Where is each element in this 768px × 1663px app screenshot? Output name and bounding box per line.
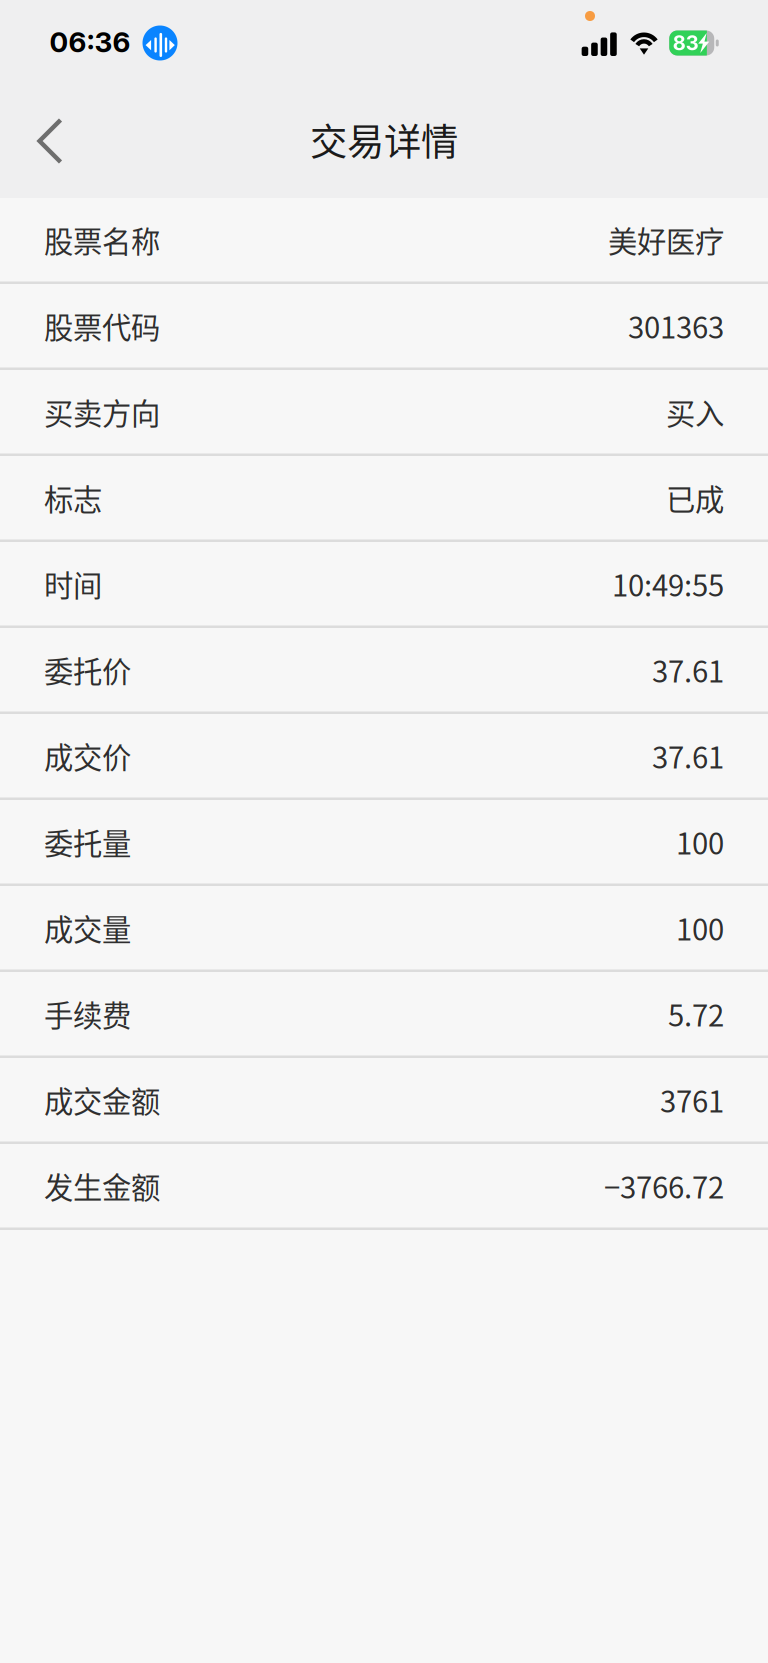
button[interactable]: 委托价 bbox=[0, 628, 768, 714]
staticText: 301363 bbox=[628, 304, 724, 347]
staticText: 标志 bbox=[44, 476, 102, 519]
button[interactable]: 手续费 bbox=[0, 972, 768, 1058]
button[interactable]: 标志 bbox=[0, 456, 768, 542]
staticText: 发生金额 bbox=[44, 1164, 160, 1207]
staticText: 37.61 bbox=[652, 734, 724, 777]
staticText: 成交量 bbox=[44, 906, 131, 949]
button[interactable]: 成交量 bbox=[0, 886, 768, 972]
button[interactable]: 委托量 bbox=[0, 800, 768, 886]
staticText: 委托价 bbox=[44, 648, 131, 691]
staticText: 交易详情 bbox=[310, 112, 458, 167]
button[interactable]: 时间 bbox=[0, 542, 768, 628]
staticText: 股票名称 bbox=[44, 218, 160, 261]
staticText: 成交价 bbox=[44, 734, 131, 777]
staticText: 委托量 bbox=[44, 820, 131, 863]
staticText: 买入 bbox=[666, 390, 724, 433]
staticText: 100 bbox=[676, 820, 724, 863]
button[interactable]: 发生金额 bbox=[0, 1144, 768, 1230]
staticText: 手续费 bbox=[44, 992, 131, 1035]
staticText: 美好医疗 bbox=[608, 218, 724, 261]
staticText: 成交金额 bbox=[44, 1078, 160, 1121]
staticText: 3761 bbox=[660, 1078, 724, 1121]
staticText: 06:36 bbox=[49, 25, 130, 59]
staticText: 37.61 bbox=[652, 648, 724, 691]
staticText: 83 bbox=[673, 31, 699, 55]
button[interactable]: Back bbox=[8, 95, 93, 187]
button[interactable]: 成交价 bbox=[0, 714, 768, 800]
staticText: 已成 bbox=[666, 476, 724, 519]
button[interactable]: 股票代码 bbox=[0, 284, 768, 370]
staticText: 股票代码 bbox=[44, 304, 160, 347]
button[interactable]: 股票名称 bbox=[0, 198, 768, 284]
button[interactable]: 成交金额 bbox=[0, 1058, 768, 1144]
staticText: 10:49:55 bbox=[612, 562, 724, 605]
staticText: 买卖方向 bbox=[44, 390, 160, 433]
staticText: −3766.72 bbox=[604, 1164, 724, 1207]
staticText: 5.72 bbox=[668, 992, 724, 1035]
staticText: 时间 bbox=[44, 562, 102, 605]
staticText: 100 bbox=[676, 906, 724, 949]
button[interactable]: 买卖方向 bbox=[0, 370, 768, 456]
